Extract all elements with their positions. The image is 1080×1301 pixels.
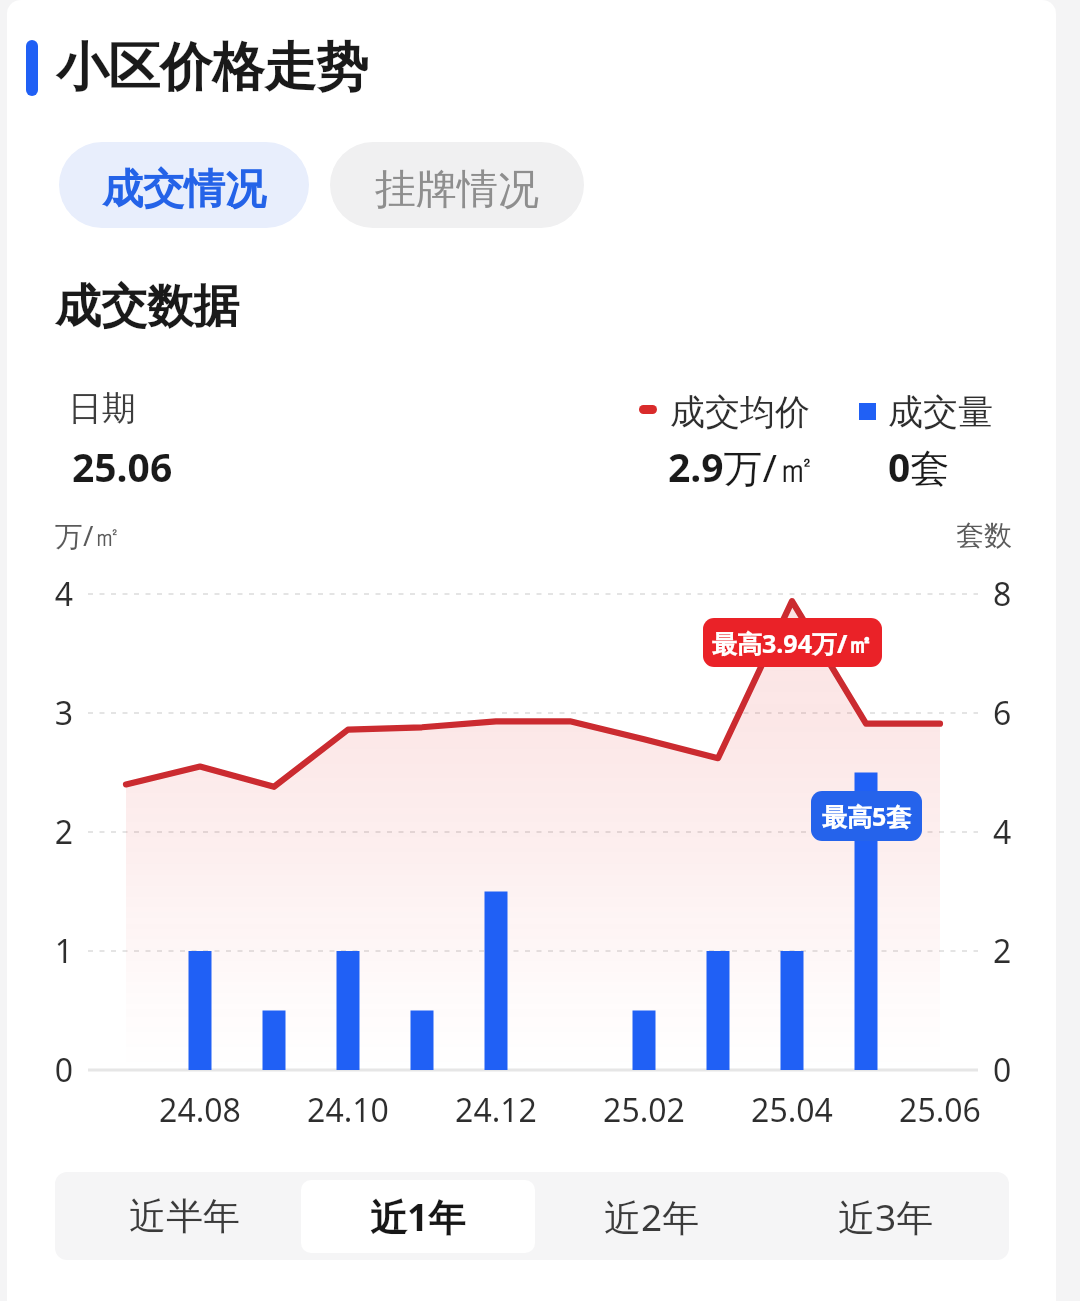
other: 成交均价图例 [639, 405, 657, 414]
staticText: 24.08 [159, 1088, 241, 1132]
staticText: 24.10 [307, 1088, 389, 1132]
staticText: 25.02 [603, 1088, 685, 1132]
staticText: 成交数据 [55, 278, 239, 336]
staticText: 成交情况 [102, 164, 266, 216]
staticText: 最高5套 [822, 799, 912, 833]
staticText: 小区价格走势 [56, 35, 368, 101]
staticText: 近半年 [129, 1193, 240, 1240]
staticText: 近3年 [838, 1191, 934, 1242]
staticText: 25.06 [72, 440, 173, 493]
staticText: 最高3.94万/㎡ [712, 626, 873, 660]
staticText: 近2年 [604, 1191, 700, 1242]
staticText: 成交量 [888, 390, 993, 434]
staticText: 挂牌情况 [375, 164, 539, 216]
staticText: 1 [54, 929, 73, 973]
button[interactable]: 成交情况 [59, 142, 309, 228]
staticText: 0 [54, 1048, 73, 1092]
staticText: 4 [993, 810, 1012, 854]
staticText: 4 [54, 572, 73, 616]
staticText: 25.06 [899, 1088, 981, 1132]
button[interactable]: 近2年 [535, 1180, 769, 1253]
staticText: 3 [54, 691, 73, 735]
staticText: 8 [993, 572, 1012, 616]
button[interactable]: 近半年 [68, 1180, 301, 1253]
button[interactable]: 近1年 [301, 1180, 535, 1253]
staticText: 0 [993, 1048, 1012, 1092]
button[interactable]: 近3年 [769, 1180, 1003, 1253]
staticText: 2 [54, 810, 73, 854]
staticText: 成交均价 [670, 390, 810, 434]
staticText: 6 [993, 691, 1012, 735]
staticText: 0套 [888, 440, 950, 493]
staticText: 近1年 [370, 1191, 466, 1242]
staticText: 2.9万/㎡ [668, 440, 817, 493]
staticText: 2 [993, 929, 1012, 973]
button[interactable]: 挂牌情况 [330, 142, 584, 228]
staticText: 25.04 [751, 1088, 833, 1132]
staticText: 日期 [68, 387, 136, 430]
staticText: 万/㎡ [55, 516, 122, 554]
staticText: 24.12 [455, 1088, 537, 1132]
staticText: 套数 [956, 518, 1012, 553]
